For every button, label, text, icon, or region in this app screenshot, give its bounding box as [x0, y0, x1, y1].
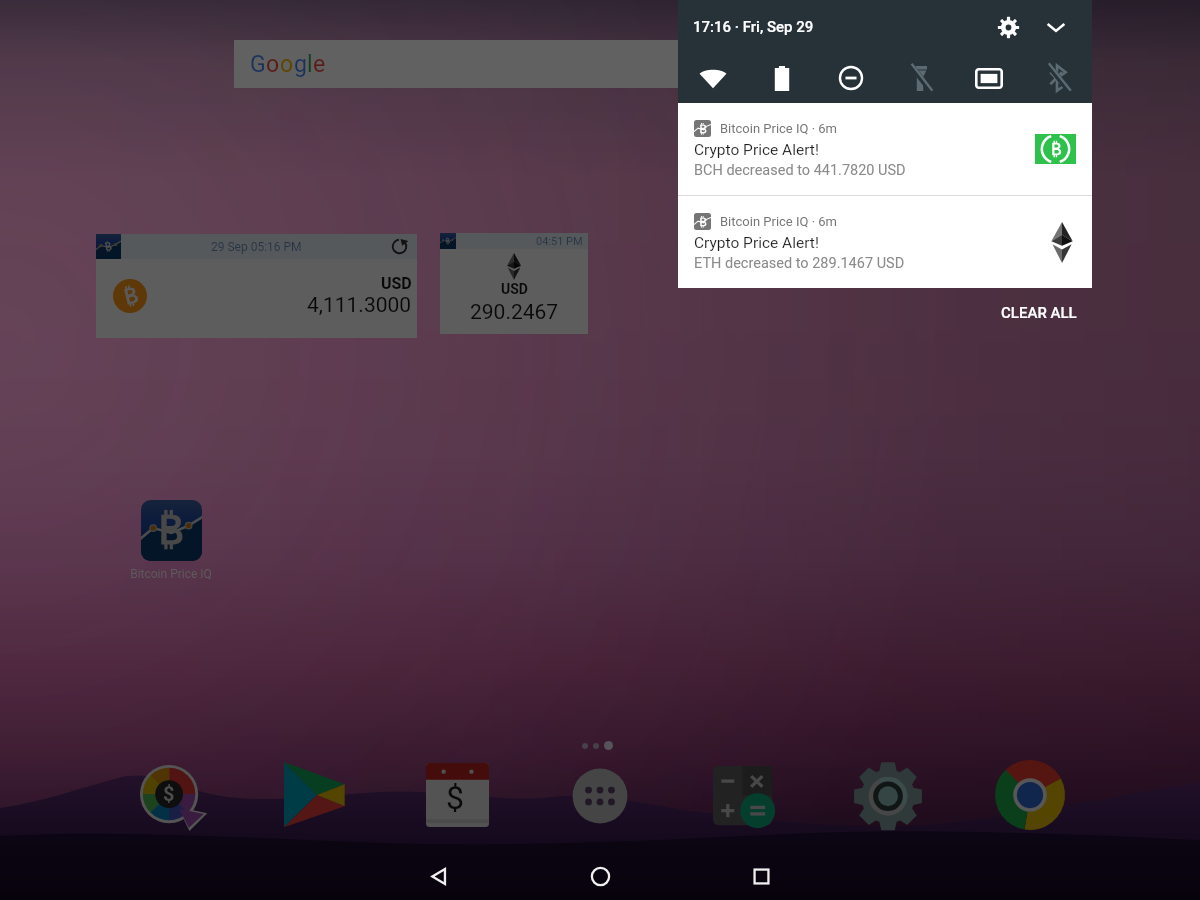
- staticText: USD: [381, 274, 412, 293]
- button[interactable]: Chrome: [995, 760, 1065, 830]
- button[interactable]: Battery: [747, 53, 816, 103]
- staticText: o: [280, 51, 294, 78]
- button[interactable]: Wi-Fi: [678, 53, 747, 103]
- staticText: Crypto Price Alert!: [694, 234, 819, 252]
- staticText: 29 Sep 05:16 PM: [211, 240, 302, 254]
- staticText: Bitcoin Price IQ · 6m: [720, 121, 838, 136]
- staticText: USD: [501, 281, 528, 297]
- button[interactable]: Home: [520, 852, 681, 900]
- staticText: 04:51 PM: [536, 235, 583, 248]
- button[interactable]: Back: [358, 852, 520, 900]
- staticText: 290.2467: [470, 300, 559, 325]
- button[interactable]: Calculator: [713, 766, 774, 827]
- button[interactable]: CLEAR ALL: [986, 292, 1092, 334]
- staticText: CLEAR ALL: [1001, 304, 1077, 322]
- button[interactable]: 04:51 PM: [440, 233, 588, 334]
- button[interactable]: 29 Sep 05:16 PM: [96, 234, 417, 338]
- button[interactable]: Currency: [426, 763, 490, 827]
- button[interactable]: Quick settings: [984, 3, 1032, 51]
- button[interactable]: Flashlight: [885, 53, 954, 103]
- staticText: e: [313, 51, 326, 78]
- staticText: Bitcoin Price IQ · 6m: [720, 214, 838, 229]
- button[interactable]: Auto rotate: [954, 53, 1023, 103]
- button[interactable]: Play Store: [282, 760, 348, 826]
- button[interactable]: Recents: [681, 852, 842, 900]
- staticText: G: [250, 51, 266, 78]
- staticText: Bitcoin Price IQ: [130, 567, 212, 581]
- button[interactable]: Collapse: [1032, 3, 1080, 51]
- other: Refresh: [391, 238, 408, 255]
- staticText: 4,111.3000: [307, 293, 412, 318]
- button[interactable]: All apps: [572, 768, 628, 824]
- button[interactable]: Do not disturb: [816, 53, 885, 103]
- staticText: l: [307, 51, 313, 78]
- button[interactable]: Settings: [853, 762, 923, 832]
- staticText: g: [294, 51, 307, 78]
- button[interactable]: Bluetooth: [1023, 53, 1092, 103]
- button[interactable]: Coin Wheel: [139, 764, 203, 828]
- button[interactable]: Bitcoin Price IQ: [118, 500, 224, 581]
- staticText: BCH decreased to 441.7820 USD: [694, 162, 906, 179]
- staticText: 17:16 · Fri, Sep 29: [693, 18, 814, 36]
- staticText: $: [446, 779, 464, 817]
- staticText: Crypto Price Alert!: [694, 141, 819, 159]
- button[interactable]: Bitcoin Price IQ · 6m: [678, 196, 1092, 288]
- button[interactable]: G: [234, 40, 934, 88]
- staticText: ETH decreased to 289.1467 USD: [694, 255, 905, 272]
- button[interactable]: Bitcoin Price IQ · 6m: [678, 103, 1092, 195]
- staticText: o: [266, 51, 280, 78]
- staticText: $: [163, 782, 175, 805]
